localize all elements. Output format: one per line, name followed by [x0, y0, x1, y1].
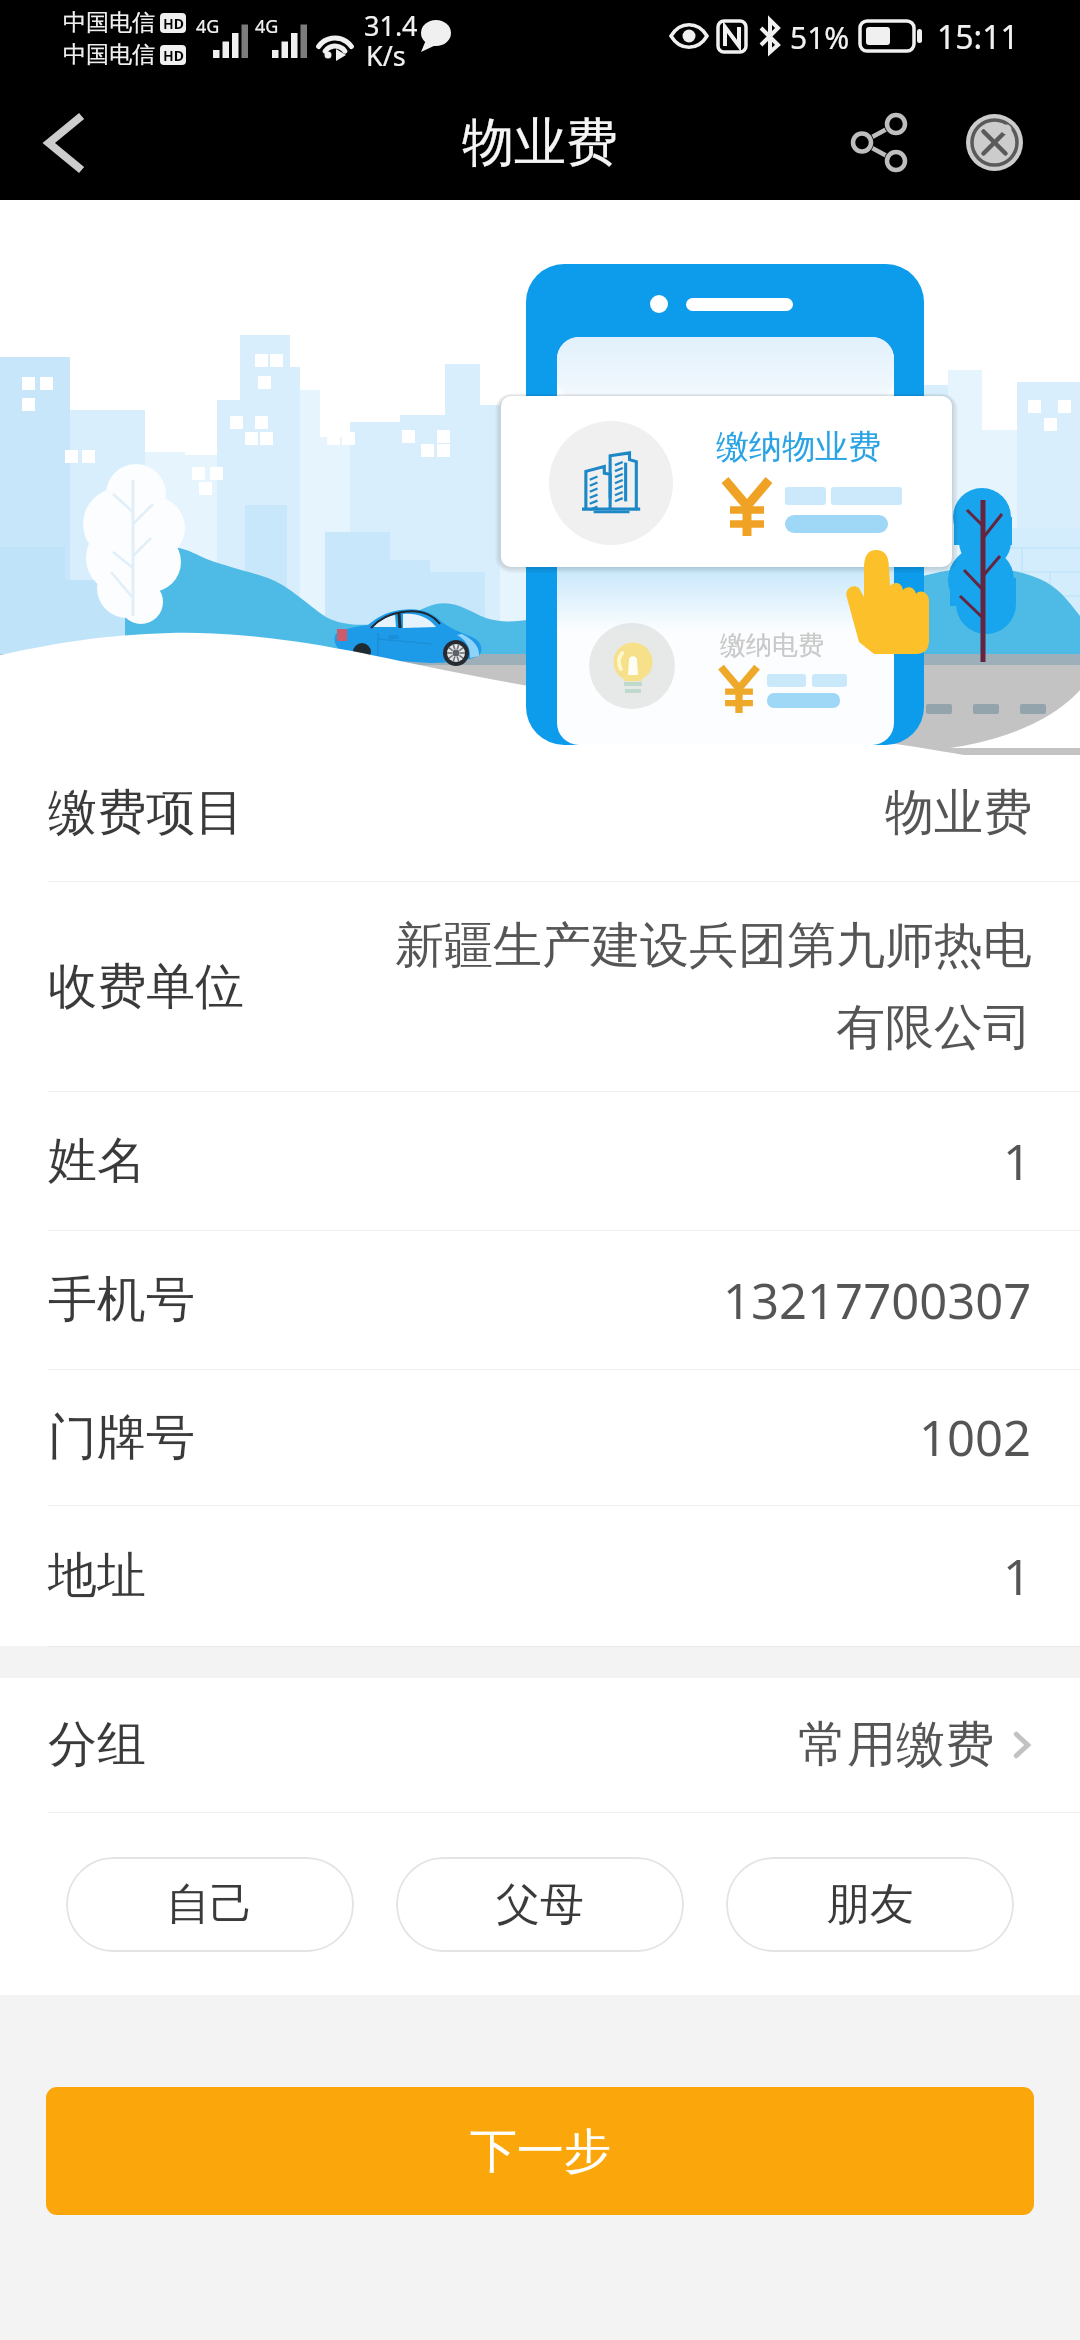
- staticText: 4G: [196, 14, 220, 39]
- staticText: 物业费: [885, 782, 1032, 844]
- staticText: 13217700307: [723, 1267, 1032, 1334]
- staticText: 51%: [790, 17, 850, 58]
- button[interactable]: 缴费项目: [48, 745, 1032, 881]
- staticText: 缴纳电费: [720, 629, 824, 662]
- button[interactable]: 姓名: [48, 1092, 1032, 1230]
- staticText: 缴纳物业费: [716, 426, 881, 468]
- staticText: 常用缴费: [798, 1714, 994, 1776]
- staticText: 收费单位: [48, 956, 244, 1018]
- staticText: 4G: [255, 14, 279, 39]
- button[interactable]: Share: [820, 85, 938, 200]
- button[interactable]: 朋友: [726, 1857, 1014, 1952]
- button[interactable]: 收费单位: [48, 882, 1032, 1091]
- button[interactable]: Back: [10, 85, 118, 200]
- button[interactable]: 门牌号: [48, 1370, 1032, 1505]
- staticText: 1: [1003, 1128, 1032, 1195]
- staticText: 父母: [496, 1877, 584, 1932]
- staticText: 1002: [919, 1404, 1032, 1471]
- staticText: HD: [163, 46, 184, 65]
- staticText: 31.4: [364, 7, 418, 44]
- staticText: 手机号: [48, 1269, 195, 1331]
- staticText: 下一步: [470, 2122, 611, 2181]
- staticText: 朋友: [826, 1877, 914, 1932]
- staticText: 姓名: [48, 1130, 146, 1192]
- staticText: K/s: [366, 37, 406, 74]
- staticText: 自己: [166, 1877, 254, 1932]
- staticText: 15:11: [937, 15, 1019, 59]
- staticText: 分组: [48, 1714, 146, 1776]
- button[interactable]: 父母: [396, 1857, 684, 1952]
- staticText: HD: [163, 14, 184, 33]
- button[interactable]: Close: [938, 85, 1050, 200]
- button[interactable]: 下一步: [46, 2087, 1034, 2215]
- staticText: 有限公司: [836, 997, 1032, 1059]
- staticText: 缴费项目: [48, 782, 244, 844]
- staticText: 地址: [48, 1545, 146, 1607]
- staticText: 新疆生产建设兵团第九师热电: [395, 915, 1032, 977]
- staticText: 中国电信: [63, 40, 155, 69]
- staticText: 物业费: [462, 110, 618, 176]
- button[interactable]: 地址: [48, 1506, 1032, 1646]
- button[interactable]: 自己: [66, 1857, 354, 1952]
- staticText: 1: [1003, 1543, 1032, 1610]
- button[interactable]: 分组: [48, 1678, 1040, 1812]
- staticText: 中国电信: [63, 8, 155, 37]
- staticText: 门牌号: [48, 1407, 195, 1469]
- button[interactable]: 手机号: [48, 1231, 1032, 1369]
